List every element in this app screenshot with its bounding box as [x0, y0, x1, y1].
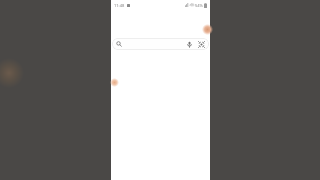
button[interactable]: Voice search: [186, 41, 193, 48]
button[interactable]: Search: [112, 38, 209, 50]
button[interactable]: Google Lens: [198, 41, 205, 48]
staticText: 54%: [195, 3, 203, 8]
other: Search: [116, 41, 122, 47]
staticText: 11:48: [114, 3, 125, 8]
